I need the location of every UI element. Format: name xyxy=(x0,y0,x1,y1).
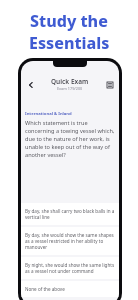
staticText: By day, she shall carry two black balls … xyxy=(25,208,115,220)
staticText: Quick Exam xyxy=(51,77,89,86)
staticText: Exam 179/200 xyxy=(57,86,83,91)
button[interactable]: Back xyxy=(24,78,37,91)
staticText: Study the xyxy=(30,10,108,32)
staticText: None of the above xyxy=(25,286,65,292)
button[interactable]: By day, she shall carry two black balls … xyxy=(21,203,119,225)
staticText: Which statement is true concerning a tow… xyxy=(25,119,115,159)
button[interactable]: None of the above xyxy=(21,281,119,297)
staticText: Essentials xyxy=(29,32,110,54)
staticText: By day, she would show the same shapes a… xyxy=(25,232,115,250)
staticText: International & Inland xyxy=(25,111,72,117)
button[interactable]: Question list xyxy=(103,78,116,91)
button[interactable]: By day, she would show the same shapes a… xyxy=(21,227,119,255)
staticText: By night, she would show the same lights… xyxy=(25,262,115,274)
button[interactable]: By night, she would show the same lights… xyxy=(21,257,119,279)
